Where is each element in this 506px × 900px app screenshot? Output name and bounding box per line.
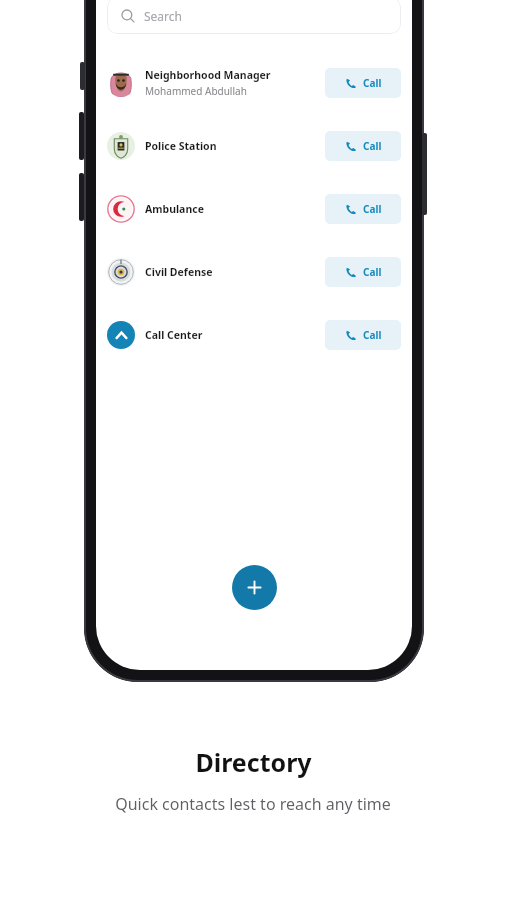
staticText: Police Station [145,139,217,153]
staticText: Mohammed Abdullah [145,84,247,98]
button[interactable]: Civil Defense [96,240,412,303]
staticText: Ambulance [145,202,204,216]
staticText: Call [363,202,382,216]
button[interactable]: Call [325,257,401,287]
staticText: Civil Defense [145,265,213,279]
button[interactable]: Call [325,320,401,350]
staticText: Call [363,139,382,153]
button[interactable]: Search [107,0,401,34]
staticText: Neighborhood Manager [145,68,271,82]
button[interactable]: Police Station [96,114,412,177]
button[interactable]: Neighborhood Manager [96,51,412,114]
staticText: Search [144,8,182,24]
staticText: Call Center [145,328,203,342]
staticText: Call [363,76,382,90]
button[interactable]: Call [325,68,401,98]
button[interactable]: Ambulance [96,177,412,240]
button[interactable]: Call Center [96,303,412,366]
staticText: Call [363,265,382,279]
staticText: Quick contacts lest to reach any time [115,793,391,815]
button[interactable]: Call [325,131,401,161]
button[interactable]: Call [325,194,401,224]
button[interactable]: Add contact [232,565,277,610]
staticText: Directory [195,745,312,779]
staticText: Call [363,328,382,342]
